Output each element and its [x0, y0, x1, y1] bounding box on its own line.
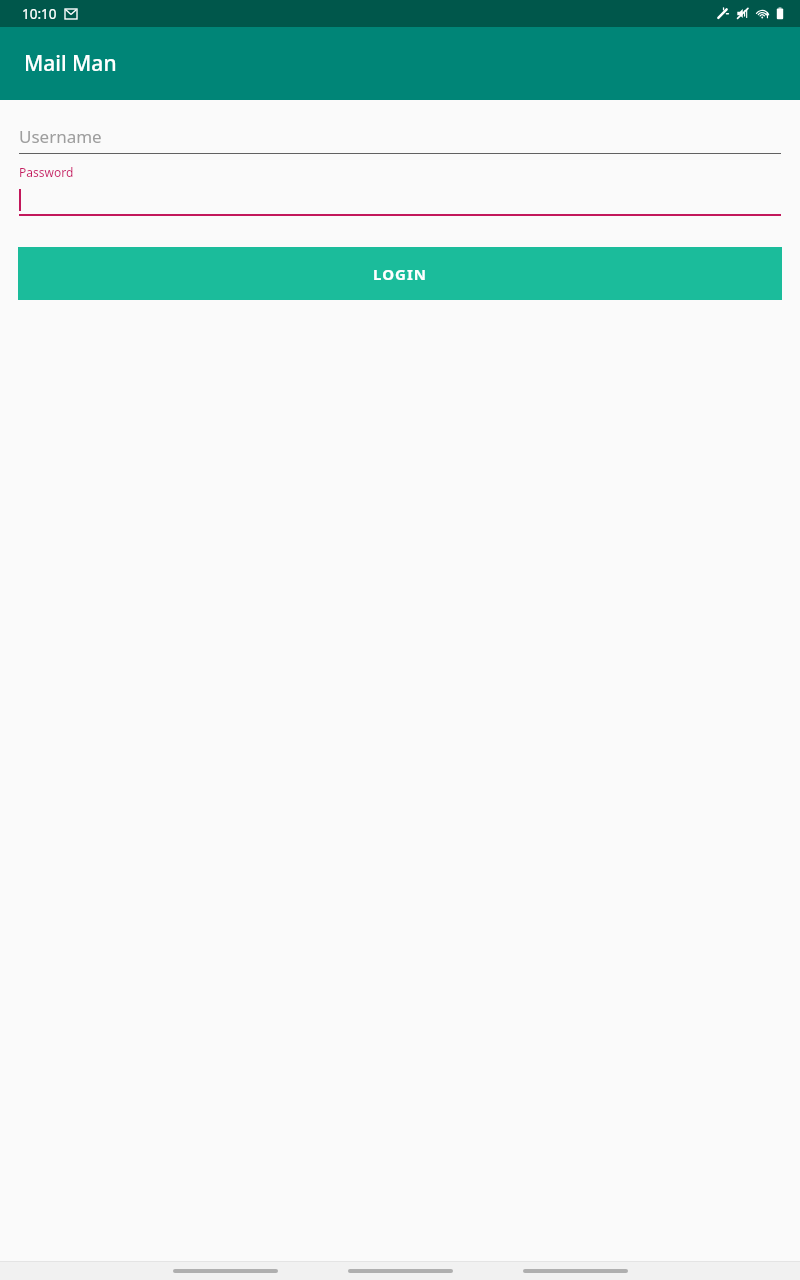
- button[interactable]: Recent apps: [523, 1262, 628, 1280]
- button[interactable]: Password: [19, 164, 781, 216]
- staticText: 10:10: [22, 5, 57, 23]
- button[interactable]: Home: [348, 1262, 453, 1280]
- staticText: LOGIN: [373, 264, 427, 284]
- staticText: Password: [19, 164, 74, 180]
- button[interactable]: Username: [19, 119, 781, 154]
- staticText: Username: [19, 125, 102, 148]
- button[interactable]: Back: [173, 1262, 278, 1280]
- button[interactable]: LOGIN: [18, 247, 782, 300]
- staticText: Mail Man: [24, 49, 117, 78]
